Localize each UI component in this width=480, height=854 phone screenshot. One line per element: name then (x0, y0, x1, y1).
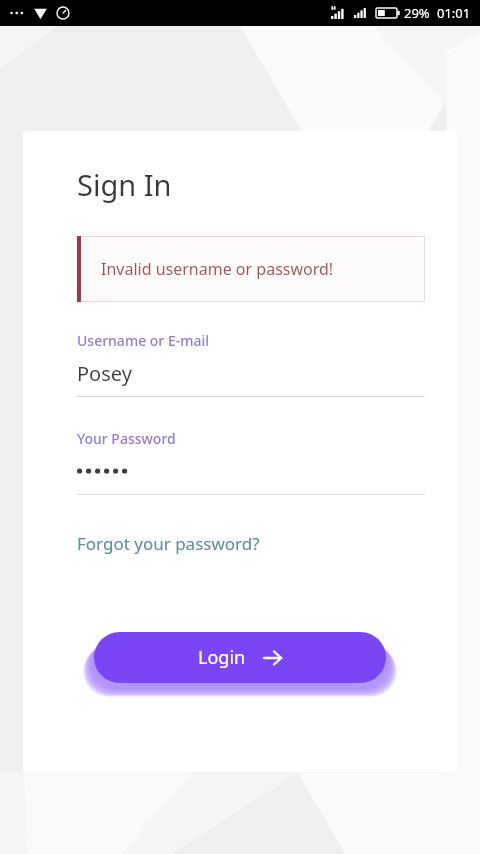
staticText: Sign In (77, 165, 172, 204)
staticText: Posey (77, 360, 132, 387)
staticText: Forgot your password? (77, 532, 260, 555)
button[interactable]: Username or E-mail (77, 331, 425, 397)
staticText: Your Password (77, 429, 176, 448)
staticText: 29% (404, 4, 430, 22)
button[interactable]: Login (94, 632, 386, 683)
staticText: Username or E-mail (77, 331, 210, 350)
staticText: Login (198, 645, 246, 670)
staticText: 01:01 (437, 4, 471, 22)
other: Login (263, 648, 283, 668)
staticText: Invalid username or password! (101, 258, 334, 280)
button[interactable]: Your Password (77, 429, 425, 495)
button[interactable]: Forgot your password? (75, 528, 262, 559)
